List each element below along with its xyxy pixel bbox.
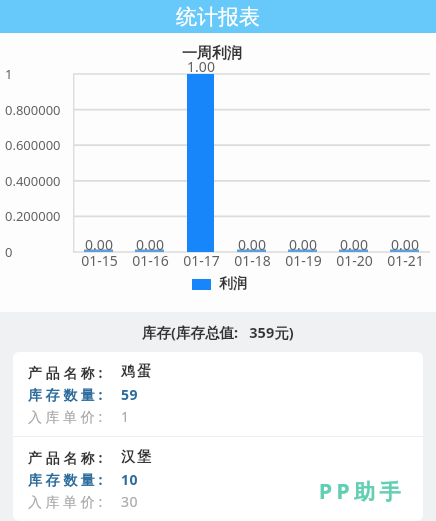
button[interactable]: 产品名称: [13,437,423,521]
staticText: 0.200000 [5,207,61,225]
staticText: 入库单价: [28,492,121,511]
staticText: 0.00 [340,235,368,254]
staticText: 01-18 [234,251,271,270]
staticText: 汉堡 [121,448,154,466]
staticText: 产品名称: [28,363,121,382]
staticText: 59 [121,385,139,404]
staticText: 0.600000 [5,136,61,154]
staticText: 01-21 [387,251,424,270]
button[interactable]: 产品名称: [13,352,423,436]
staticText: 0.00 [85,235,113,254]
staticText: 01-15 [81,251,118,270]
staticText: 产品名称: [28,448,121,467]
staticText: 0.800000 [5,101,61,119]
staticText: 30 [121,492,139,511]
staticText: 利润 [219,275,247,293]
staticText: 统计报表 [176,4,260,30]
staticText: 1 [121,407,130,426]
staticText: 0.00 [289,235,317,254]
button[interactable]: 统计报表 [0,0,436,33]
staticText: 01-16 [132,251,169,270]
staticText: 库存(库存总值: 359元) [142,322,294,342]
staticText: 0.400000 [5,172,61,190]
staticText: 1 [5,65,13,83]
staticText: 0.00 [136,235,164,254]
staticText: 0.00 [391,235,419,254]
staticText: 01-20 [336,251,373,270]
staticText: 1.00 [187,57,215,76]
staticText: 一周利润 [182,44,242,63]
staticText: 库存数量: [28,385,121,404]
staticText: 01-19 [285,251,322,270]
staticText: 库存数量: [28,470,121,489]
staticText: PP助手 [319,477,406,506]
staticText: 0.00 [238,235,266,254]
staticText: 10 [121,470,139,489]
staticText: 01-17 [183,251,220,270]
staticText: 入库单价: [28,407,121,426]
staticText: 0 [5,243,13,261]
staticText: 鸡蛋 [121,363,154,381]
